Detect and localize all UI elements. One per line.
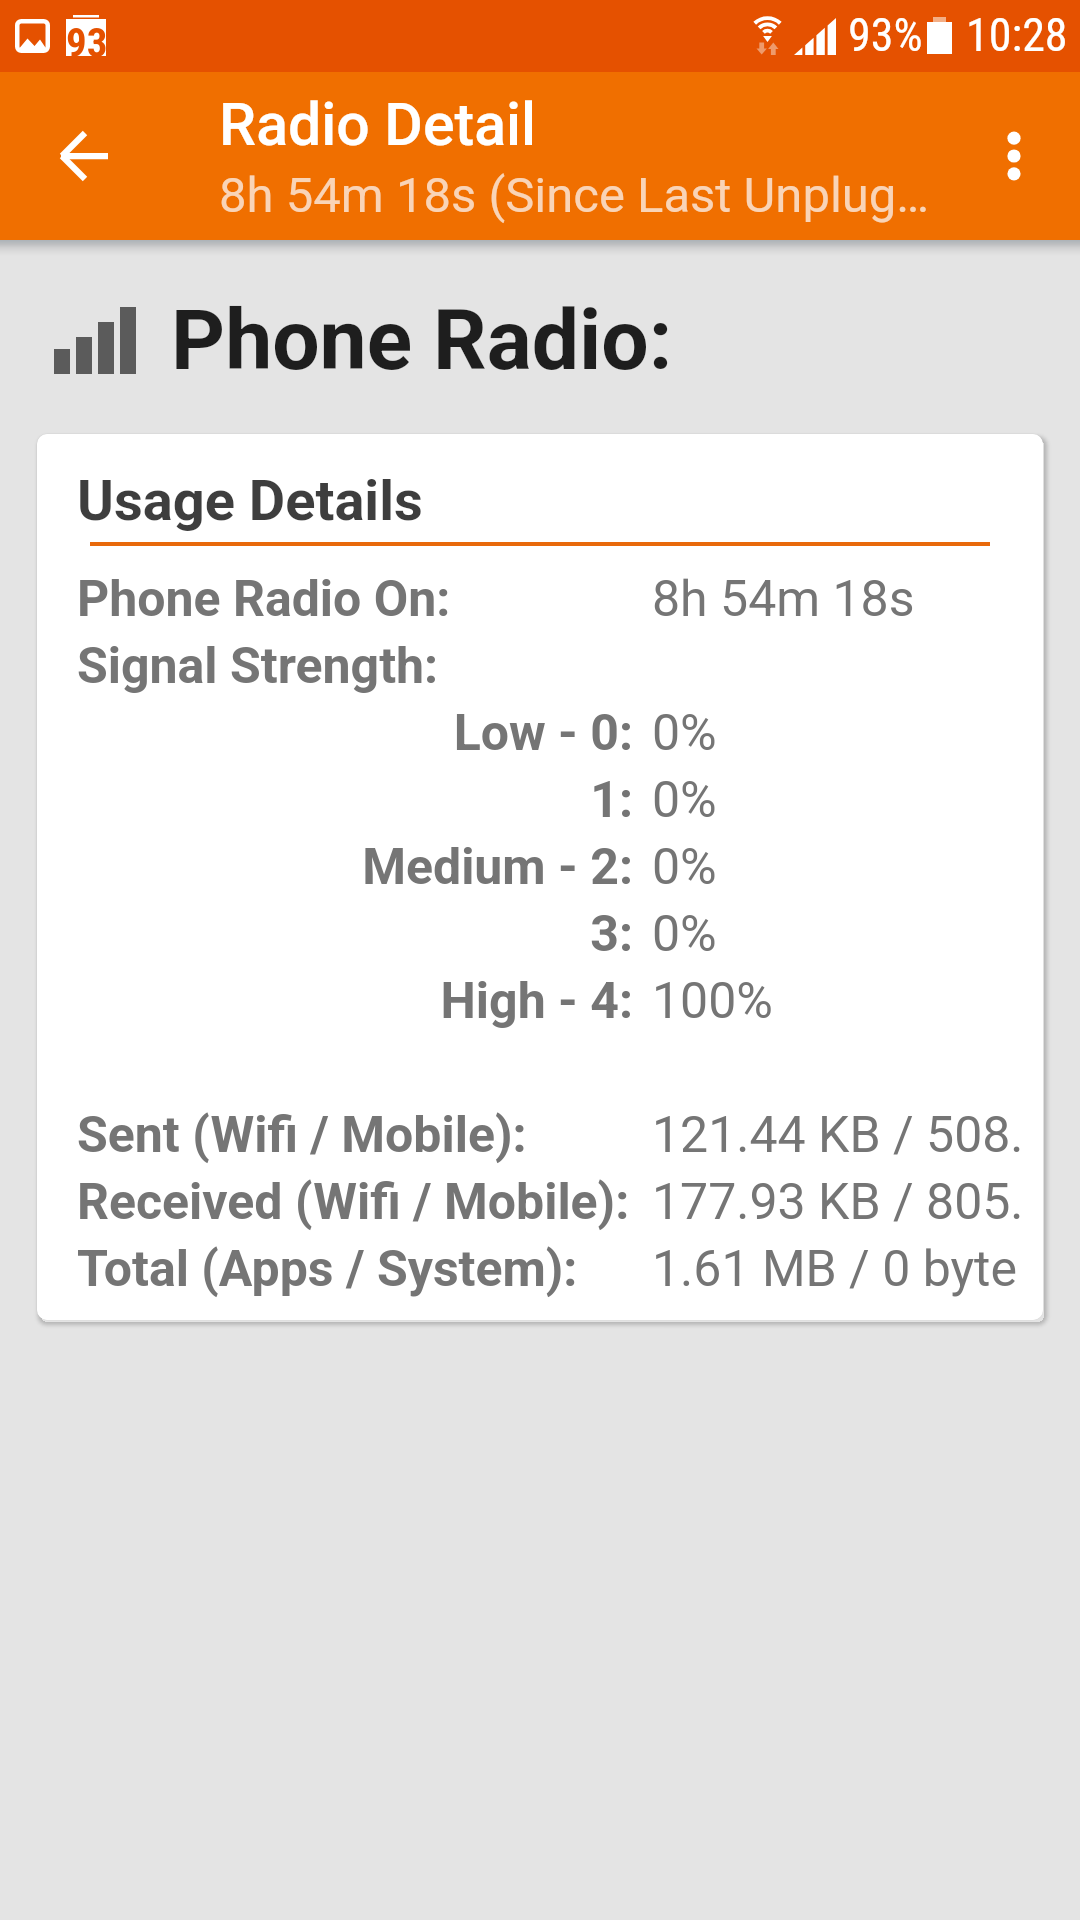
staticText: High - 4: bbox=[77, 972, 633, 1031]
staticText: 0% bbox=[652, 771, 717, 830]
staticText: 3: bbox=[77, 905, 633, 964]
staticText: Usage Details bbox=[77, 468, 423, 534]
staticText: 121.44 KB / 508. bbox=[652, 1106, 1024, 1165]
staticText: 8h 54m 18s bbox=[652, 570, 915, 629]
staticText: 8h 54m 18s (Since Last Unplug… bbox=[219, 167, 930, 224]
button[interactable]: More options bbox=[966, 108, 1062, 204]
button[interactable]: Usage Details bbox=[37, 434, 1043, 1320]
staticText: Received (Wifi / Mobile): bbox=[77, 1173, 633, 1232]
staticText: 93% bbox=[848, 8, 923, 62]
staticText: 10:28 bbox=[966, 8, 1068, 62]
staticText: 1.61 MB / 0 byte bbox=[652, 1240, 1017, 1299]
staticText: 0% bbox=[652, 704, 717, 763]
staticText: Signal Strength: bbox=[77, 637, 633, 696]
staticText: 93 bbox=[66, 19, 106, 56]
staticText: 177.93 KB / 805. bbox=[652, 1173, 1024, 1232]
button[interactable]: Back bbox=[36, 108, 132, 204]
staticText: Total (Apps / System): bbox=[77, 1240, 633, 1299]
staticText: 1: bbox=[77, 771, 633, 830]
staticText: Medium - 2: bbox=[77, 838, 633, 897]
staticText: 100% bbox=[652, 972, 773, 1031]
staticText: Sent (Wifi / Mobile): bbox=[77, 1106, 633, 1165]
staticText: Radio Detail bbox=[219, 90, 537, 159]
staticText: Phone Radio: bbox=[171, 291, 673, 389]
staticText: 0% bbox=[652, 838, 717, 897]
staticText: Low - 0: bbox=[77, 704, 633, 763]
staticText: Phone Radio On: bbox=[77, 570, 633, 629]
staticText: 0% bbox=[652, 905, 717, 964]
